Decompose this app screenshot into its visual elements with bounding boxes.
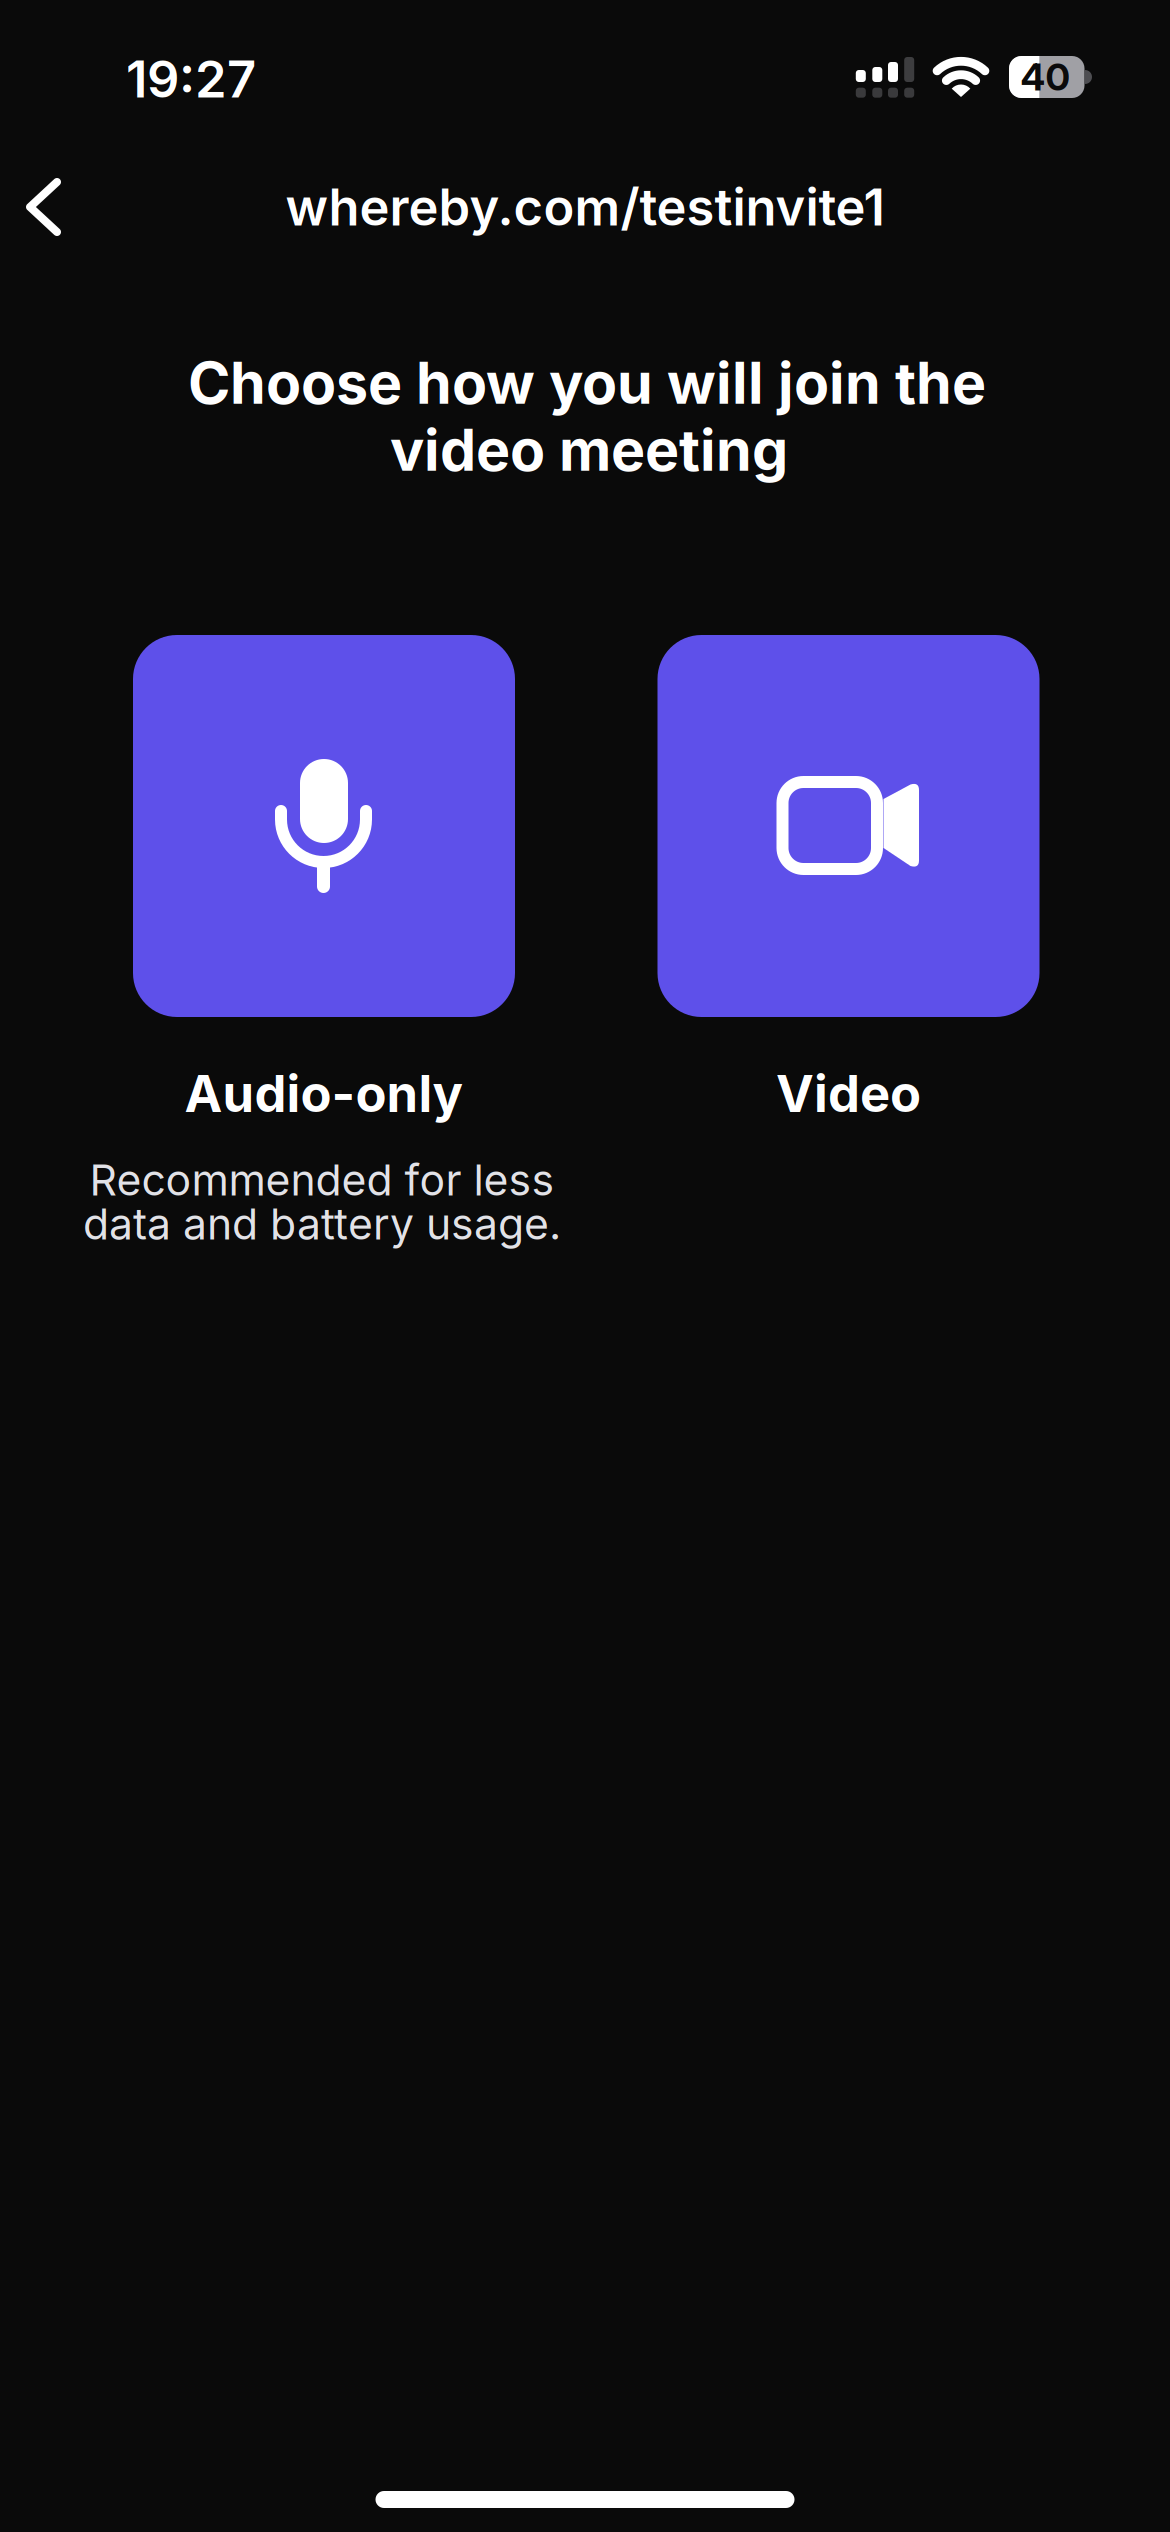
staticText: Recommended for less [89,1155,554,1205]
staticText: data and battery usage. [83,1199,561,1249]
staticText: Video [776,1064,921,1123]
staticText: Audio-only [184,1064,463,1123]
button[interactable]: Back [20,172,66,242]
button[interactable]: Audio-only [94,635,554,1170]
staticText: whereby.com/testinvite1 [285,177,884,237]
button[interactable]: Video [618,635,1078,1170]
staticText: 40 [1020,55,1069,99]
staticText: Choose how you will join the [188,349,986,417]
staticText: 19:27 [126,49,256,109]
staticText: video meeting [390,416,788,484]
